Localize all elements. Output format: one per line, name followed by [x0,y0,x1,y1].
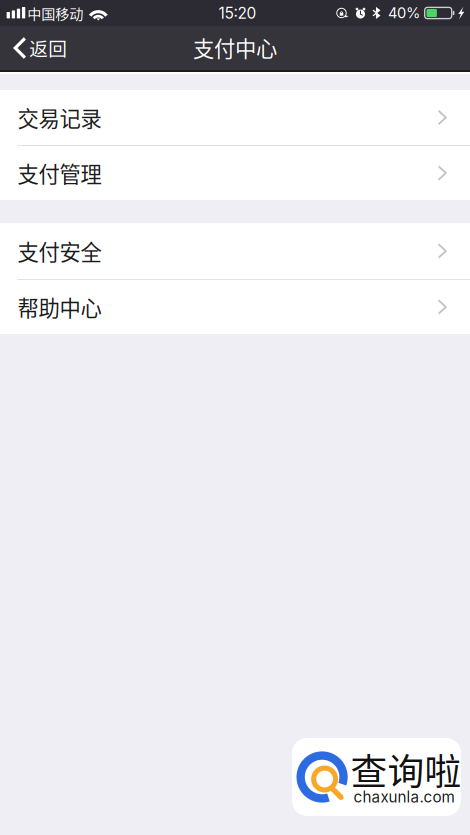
staticText: 查询啦 [350,742,461,796]
button[interactable]: 支付管理 [0,146,470,200]
button[interactable]: 返回 [0,26,79,70]
staticText: 支付管理 [17,158,101,188]
staticText: 中国移动 [27,3,83,23]
staticText: 支付中心 [193,32,277,63]
staticText: 帮助中心 [17,292,101,322]
staticText: 交易记录 [17,102,101,133]
staticText: 15:20 [218,4,256,22]
staticText: 返回 [29,34,67,61]
button[interactable]: 交易记录 [0,90,470,146]
button[interactable]: 支付安全 [0,223,470,280]
staticText: 40% [388,4,420,22]
staticText: chaxunla.com [353,788,454,806]
staticText: 支付安全 [17,236,101,266]
button[interactable]: 帮助中心 [0,280,470,334]
